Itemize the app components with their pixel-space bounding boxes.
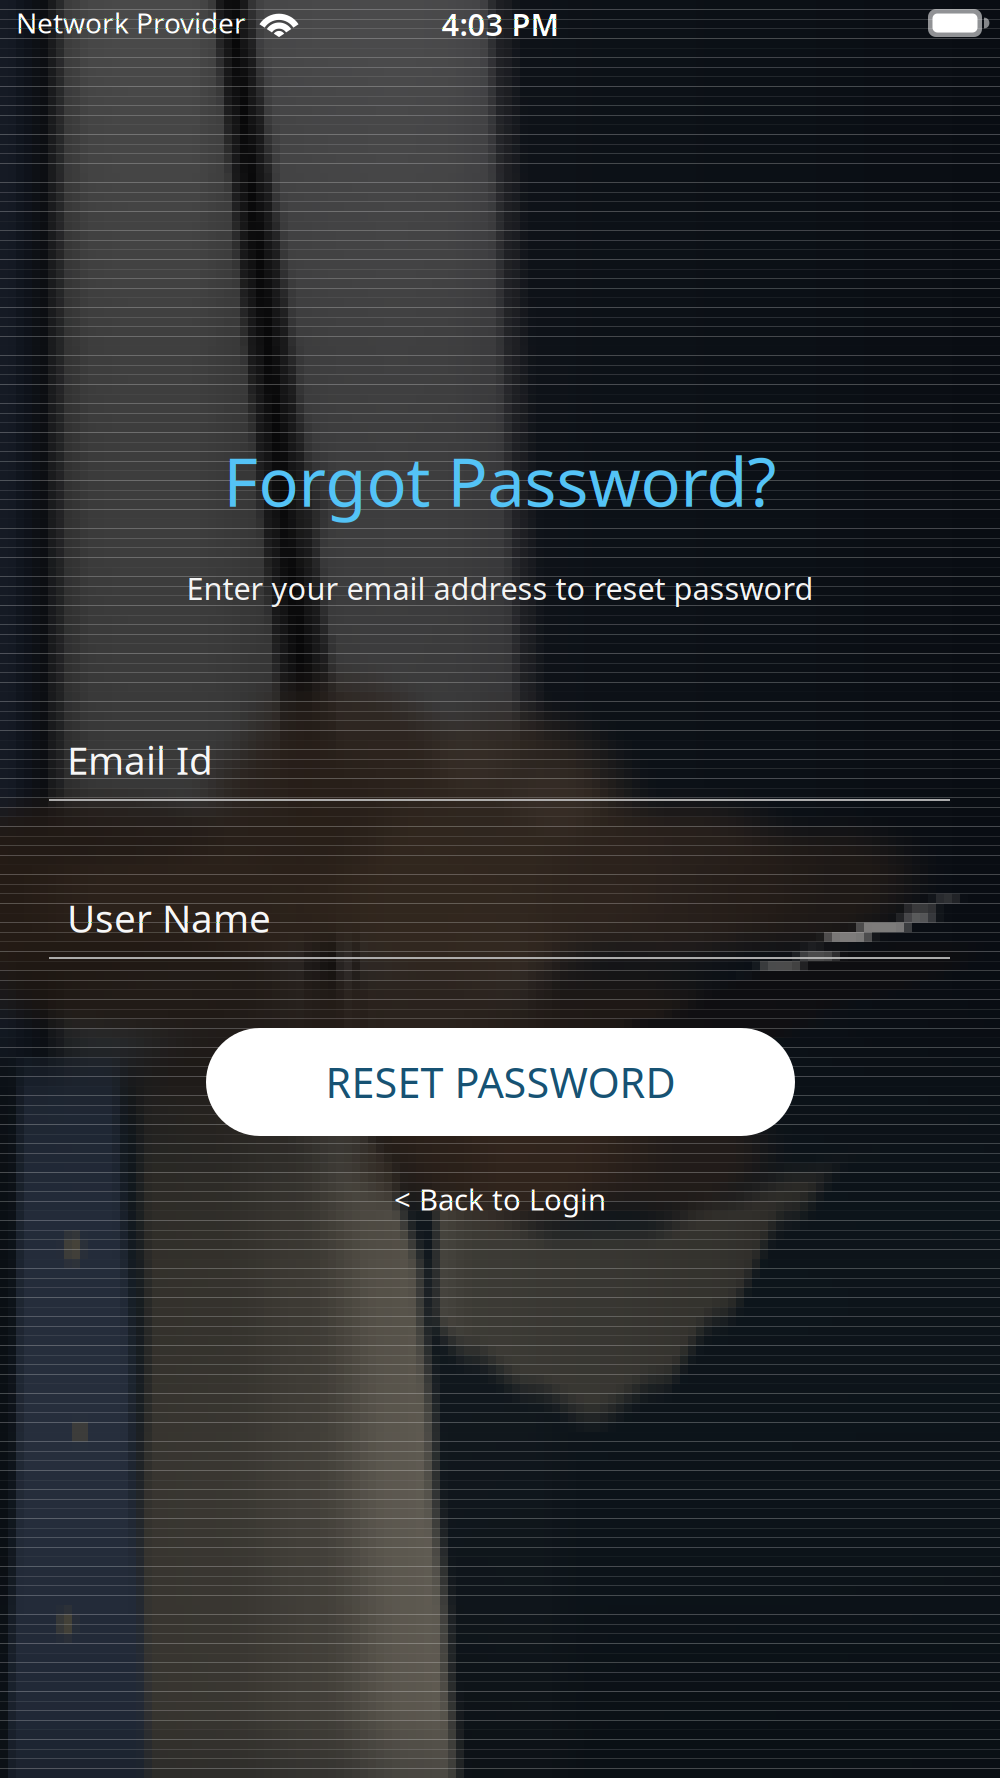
staticText: Forgot Password? bbox=[223, 437, 776, 525]
staticText: User Name bbox=[67, 892, 271, 943]
staticText: Email Id bbox=[67, 734, 213, 785]
staticText: Enter your email address to reset passwo… bbox=[186, 568, 813, 608]
button[interactable]: < Back to Login bbox=[350, 1177, 650, 1221]
staticText: < Back to Login bbox=[394, 1179, 606, 1218]
staticText: 4:03 PM bbox=[441, 4, 558, 44]
button[interactable]: RESET PASSWORD bbox=[206, 1028, 795, 1136]
staticText: RESET PASSWORD bbox=[325, 1055, 675, 1109]
staticText: Network Provider bbox=[16, 4, 246, 41]
